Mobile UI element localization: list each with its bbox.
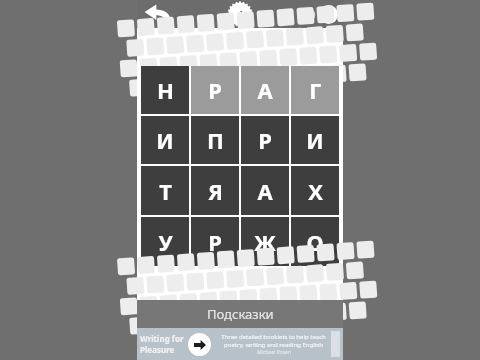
button[interactable]: Р [191,66,239,114]
staticText: П [207,125,224,155]
button[interactable]: Н [141,66,189,114]
staticText: Ж [254,227,276,257]
staticText: Р [208,75,222,105]
button[interactable]: Ж [241,217,289,266]
button[interactable]: Level 4 [227,1,253,27]
staticText: А [257,75,273,105]
button[interactable]: И [141,116,189,164]
staticText: Pleasure [140,344,175,355]
staticText: Г [309,75,322,105]
staticText: 50 [303,7,316,22]
staticText: А [257,176,273,206]
button[interactable]: Я [191,166,239,215]
button[interactable]: Подсказки [137,300,343,328]
button[interactable]: И [291,116,339,164]
staticText: У [158,227,173,257]
button[interactable]: 50 [303,5,338,24]
staticText: 4 [237,7,244,22]
staticText: Т [159,176,172,206]
staticText: poetry, writing and reading English [224,341,323,349]
button[interactable]: У [141,217,189,266]
staticText: Р [208,227,222,257]
staticText: И [156,125,174,155]
button[interactable]: Back [140,0,176,28]
staticText: Michael Rosen [257,349,291,356]
staticText: Подсказки [207,305,274,323]
button[interactable]: О [291,217,339,266]
staticText: Х [308,176,323,206]
staticText: Р [258,125,272,155]
button[interactable]: А [241,66,289,114]
button[interactable]: Т [141,166,189,215]
button[interactable]: Х [291,166,339,215]
staticText: Я [208,176,223,206]
staticText: Three detailed booklets to help teach [221,333,326,341]
button[interactable]: Advertisement [137,328,343,360]
button[interactable]: П [191,116,239,164]
button[interactable]: А [241,166,289,215]
button[interactable]: Г [291,66,339,114]
button[interactable]: Р [191,217,239,266]
button[interactable]: Р [241,116,289,164]
staticText: И [306,125,324,155]
staticText: Н [157,75,174,105]
staticText: О [306,227,324,257]
staticText: Writing for [140,333,184,344]
